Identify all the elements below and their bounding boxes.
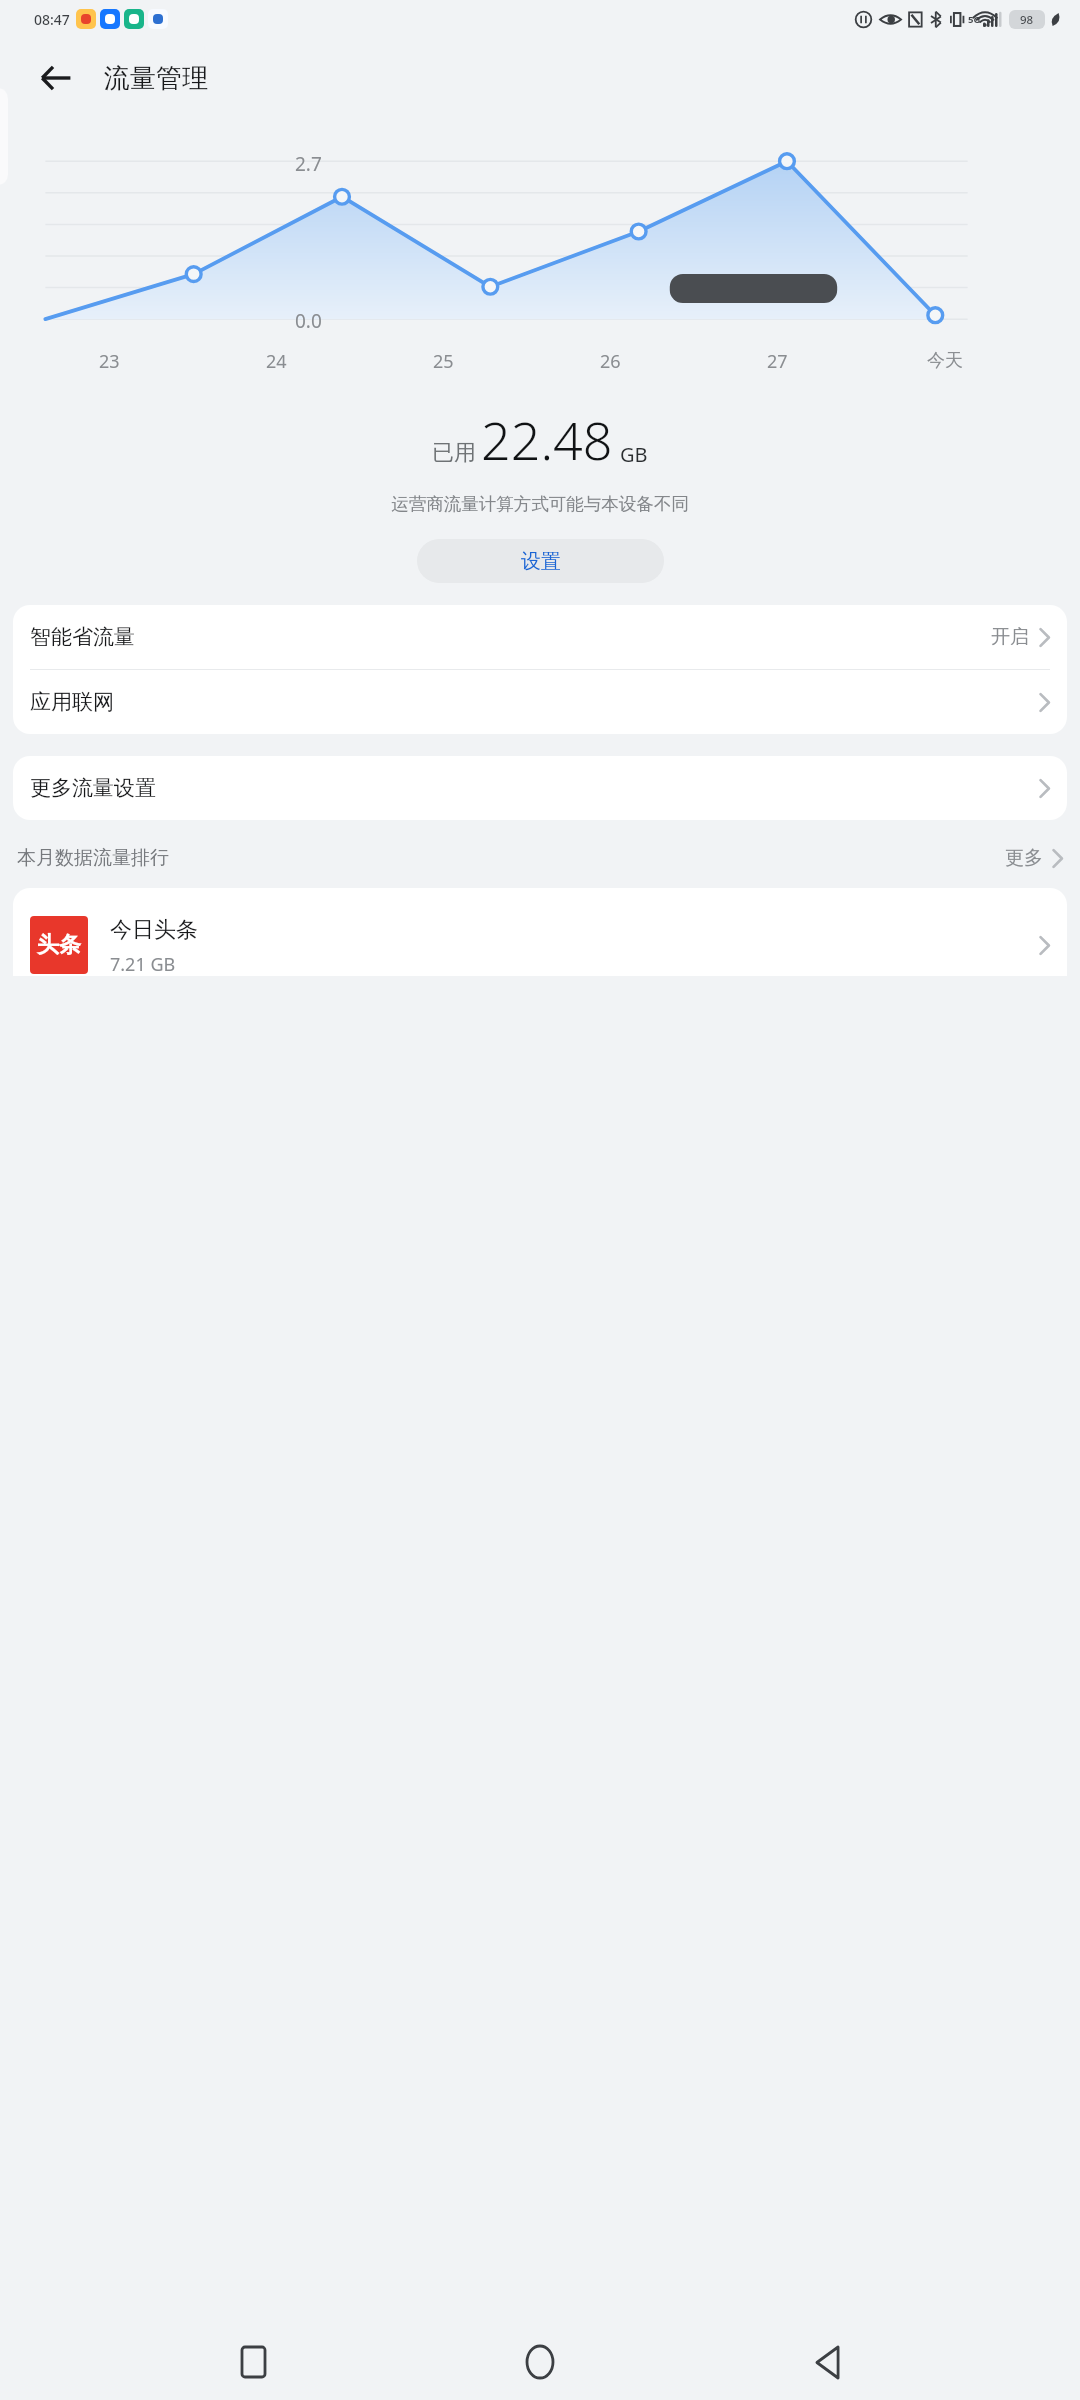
staticText: 本月数据流量排行 [17,846,169,870]
button[interactable]: 更多 [1005,846,1063,870]
staticText: 更多流量设置 [30,775,156,801]
staticText: 应用联网 [30,689,114,715]
staticText: 2.7 [295,151,322,177]
staticText: 头条 [37,931,81,959]
button[interactable]: 应用联网 [13,670,1067,734]
staticText: 更多 [1005,846,1043,870]
button[interactable]: Back [793,2328,861,2396]
button[interactable]: 智能省流量 [13,605,1067,670]
staticText: GB [620,441,648,468]
staticText: 5G [968,13,981,26]
staticText: 0.0 [295,308,322,334]
button[interactable]: 设置 [417,539,664,583]
staticText: 智能省流量 [30,624,135,650]
staticText: 今日头条 [110,916,198,944]
staticText: 流量管理 [104,62,208,95]
staticText: 23 [99,349,120,374]
button[interactable]: Recent apps [219,2328,287,2396]
staticText: 运营商流量计算方式可能与本设备不同 [0,493,1080,515]
staticText: 26 [600,349,621,374]
staticText: 24 [266,349,287,374]
staticText: 7.21 GB [110,952,176,976]
button[interactable]: 头条 [13,888,1067,976]
staticText: 开启 [991,625,1029,649]
staticText: 设置 [521,549,561,574]
staticText: 25 [433,349,454,374]
button[interactable]: 更多流量设置 [13,756,1067,820]
staticText: 98 [1020,12,1034,28]
button[interactable]: Home [506,2328,574,2396]
staticText: 27 [767,349,788,374]
staticText: 08:47 [34,10,70,29]
staticText: 22.48 [481,404,613,475]
staticText: 今天 [927,349,963,372]
button[interactable]: Back [28,50,84,106]
staticText: 已用 [432,439,476,467]
